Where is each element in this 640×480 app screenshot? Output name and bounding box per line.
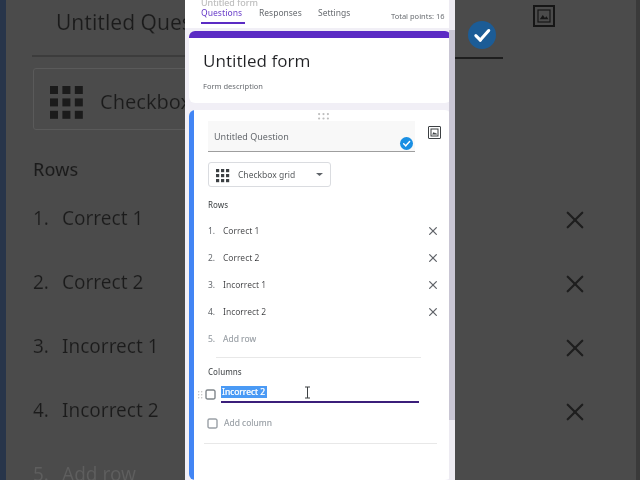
staticText: Columns — [208, 366, 242, 377]
button[interactable]: 2. — [194, 244, 451, 271]
staticText: Checkbox grid — [238, 169, 316, 181]
button[interactable]: Responses — [255, 4, 306, 22]
button[interactable]: Questions — [197, 4, 247, 22]
button[interactable]: Remove row 3 — [427, 279, 439, 291]
staticText: Incorrect 2 — [222, 386, 266, 398]
staticText: Add row — [62, 461, 136, 480]
staticText: 1. — [33, 205, 49, 231]
staticText: Correct 2 — [223, 252, 427, 264]
staticText: 4. — [208, 306, 216, 318]
staticText: Untitled form — [203, 49, 311, 72]
staticText: Incorrect 2 — [62, 397, 159, 423]
staticText: Rows — [208, 199, 229, 210]
staticText: Untitled Question — [214, 130, 289, 142]
staticText: Correct 1 — [223, 225, 427, 237]
staticText: Incorrect 1 — [223, 279, 427, 291]
staticText: 1. — [208, 225, 216, 237]
staticText: Incorrect 2 — [223, 306, 427, 318]
staticText: Checkbox — [100, 88, 192, 115]
button[interactable]: Remove row 1 — [427, 225, 439, 237]
staticText: Add column — [224, 417, 272, 429]
button[interactable]: Add column — [194, 412, 451, 434]
staticText: 3. — [208, 279, 216, 291]
staticText: Untitled form — [201, 0, 258, 8]
button[interactable]: Remove row 4 — [427, 306, 439, 318]
staticText: 5. — [33, 461, 49, 480]
staticText: Correct 1 — [62, 205, 144, 231]
staticText: Questions — [201, 7, 243, 19]
staticText: Responses — [259, 7, 302, 19]
button[interactable]: 1. — [194, 217, 451, 244]
button[interactable]: Checkbox grid — [208, 162, 331, 187]
button[interactable]: 4. — [194, 298, 451, 325]
button[interactable]: Incorrect 2 — [194, 382, 451, 406]
button[interactable]: Untitled Question — [208, 121, 415, 151]
staticText: Correct 2 — [62, 269, 144, 295]
staticText: Form description — [203, 81, 263, 91]
staticText: Untitled Quest — [56, 8, 200, 37]
staticText: Settings — [318, 7, 351, 19]
staticText: Add row — [223, 333, 257, 345]
staticText: 2. — [208, 252, 216, 264]
staticText: 3. — [33, 333, 49, 359]
button[interactable]: Add image — [427, 125, 441, 139]
staticText: 4. — [33, 397, 49, 423]
button[interactable]: 3. — [194, 271, 451, 298]
button[interactable]: 5. — [194, 325, 451, 352]
staticText: Rows — [33, 157, 79, 182]
staticText: Total points: 16 — [391, 11, 445, 21]
staticText: 5. — [208, 333, 216, 345]
button[interactable]: Remove row 2 — [427, 252, 439, 264]
staticText: 2. — [33, 269, 49, 295]
staticText: Incorrect 1 — [62, 333, 159, 359]
button[interactable]: Settings — [314, 4, 355, 22]
